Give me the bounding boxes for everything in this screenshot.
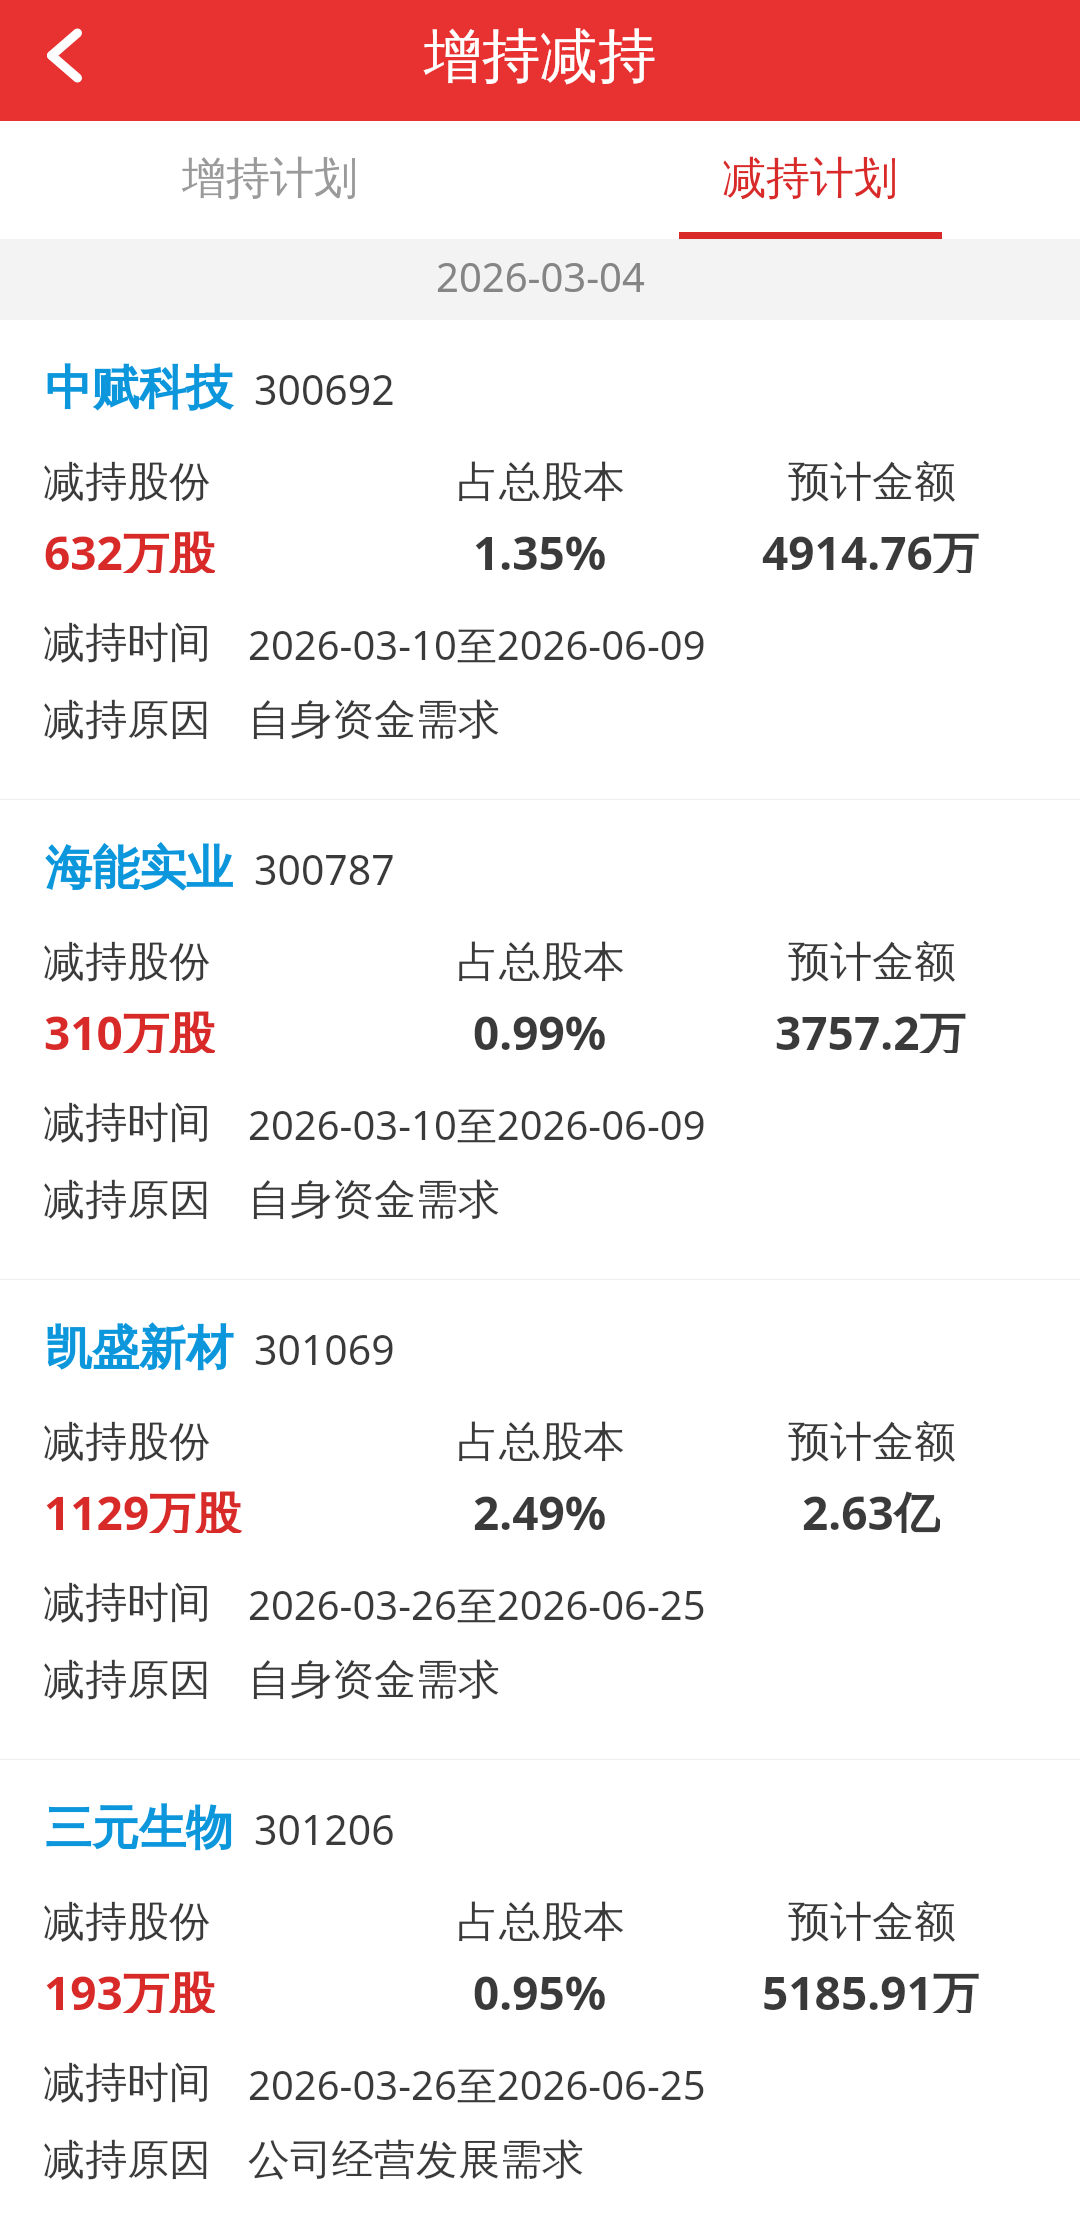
staticText: 减持时间 — [43, 1097, 211, 1145]
staticText: 4914.76万 — [762, 521, 979, 573]
staticText: 3757.2万 — [775, 1001, 966, 1053]
staticText: 占总股本 — [457, 456, 625, 504]
button[interactable]: 海能实业 — [0, 800, 1080, 1279]
staticText: 减持股份 — [43, 1896, 211, 1944]
staticText: 0.99% — [473, 1001, 607, 1053]
staticText: 预计金额 — [788, 936, 956, 984]
staticText: 2026-03-10至2026-06-09 — [248, 1097, 706, 1145]
staticText: 2.49% — [473, 1481, 607, 1533]
staticText: 公司经营发展需求 — [248, 2134, 584, 2182]
staticText: 5185.91万 — [762, 1961, 979, 2013]
button[interactable]: 减持计划 — [540, 121, 1080, 239]
staticText: 占总股本 — [457, 936, 625, 984]
staticText: 占总股本 — [457, 1416, 625, 1464]
staticText: 减持时间 — [43, 617, 211, 665]
staticText: 三元生物 — [45, 1799, 233, 1858]
staticText: 2.63亿 — [802, 1481, 940, 1533]
staticText: 301206 — [254, 1801, 395, 1857]
staticText: 预计金额 — [788, 1416, 956, 1464]
staticText: 增持计划 — [182, 151, 358, 206]
staticText: 中赋科技 — [45, 359, 233, 418]
staticText: 减持股份 — [43, 1416, 211, 1464]
button[interactable]: Back — [0, 0, 120, 121]
staticText: 减持时间 — [43, 1577, 211, 1625]
staticText: 0.95% — [473, 1961, 607, 2013]
staticText: 310万股 — [44, 1001, 215, 1053]
staticText: 海能实业 — [45, 839, 233, 898]
staticText: 增持减持 — [424, 20, 656, 93]
button[interactable]: 凯盛新材 — [0, 1280, 1080, 1759]
staticText: 减持原因 — [43, 694, 211, 742]
staticText: 2026-03-26至2026-06-25 — [248, 1577, 706, 1625]
staticText: 减持原因 — [43, 1654, 211, 1702]
staticText: 300692 — [254, 361, 395, 417]
staticText: 预计金额 — [788, 456, 956, 504]
staticText: 1.35% — [473, 521, 607, 573]
staticText: 减持原因 — [43, 1174, 211, 1222]
staticText: 减持股份 — [43, 936, 211, 984]
staticText: 预计金额 — [788, 1896, 956, 1944]
staticText: 自身资金需求 — [248, 1654, 500, 1702]
staticText: 凯盛新材 — [45, 1319, 233, 1378]
staticText: 自身资金需求 — [248, 694, 500, 742]
staticText: 减持计划 — [722, 151, 898, 206]
staticText: 减持原因 — [43, 2134, 211, 2182]
staticText: 300787 — [254, 841, 395, 897]
staticText: 1129万股 — [44, 1481, 242, 1533]
staticText: 2026-03-10至2026-06-09 — [248, 617, 706, 665]
button[interactable]: 增持计划 — [0, 121, 540, 239]
staticText: 301069 — [254, 1321, 395, 1377]
staticText: 2026-03-26至2026-06-25 — [248, 2057, 706, 2105]
staticText: 632万股 — [44, 521, 215, 573]
staticText: 193万股 — [44, 1961, 215, 2013]
staticText: 自身资金需求 — [248, 1174, 500, 1222]
button[interactable]: 中赋科技 — [0, 320, 1080, 799]
staticText: 减持股份 — [43, 456, 211, 504]
staticText: 2026-03-04 — [436, 249, 645, 303]
button[interactable]: 三元生物 — [0, 1760, 1080, 2226]
staticText: 减持时间 — [43, 2057, 211, 2105]
staticText: 占总股本 — [457, 1896, 625, 1944]
